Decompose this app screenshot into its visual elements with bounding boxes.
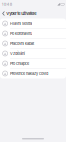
staticText: Pro chlapce [10, 61, 29, 66]
button[interactable]: Pro chlapce [0, 58, 66, 68]
button[interactable]: Hlavní sestra [0, 18, 66, 28]
staticText: Pracovní kabát [10, 41, 34, 46]
staticText: Hlavní sestra [10, 21, 32, 26]
staticText: Po koronaviru [10, 31, 32, 36]
staticText: Prevence nákazy covid [10, 71, 48, 76]
button[interactable]: Prevence nákazy covid [0, 68, 66, 78]
button[interactable]: Vzdělání [0, 48, 66, 58]
staticText: Vzdělání [10, 51, 25, 56]
staticText: Vyberte uživatele [6, 11, 36, 16]
button[interactable]: Pracovní kabát [0, 38, 66, 48]
button[interactable]: Back [0, 8, 6, 18]
staticText: 10:48 [2, 2, 12, 7]
button[interactable]: Po koronaviru [0, 28, 66, 38]
